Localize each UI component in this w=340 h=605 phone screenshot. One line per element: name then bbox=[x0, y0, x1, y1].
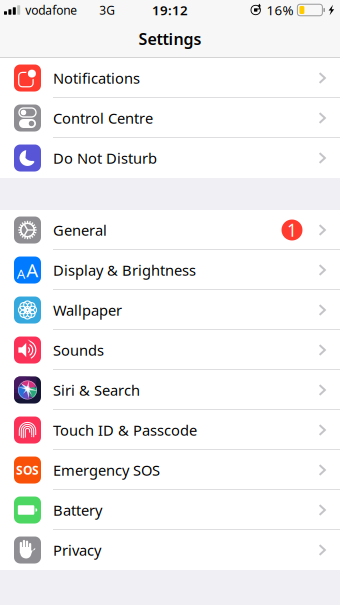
staticText: Control Centre bbox=[53, 108, 153, 128]
button[interactable]: General bbox=[0, 210, 340, 250]
staticText: 3G bbox=[99, 2, 115, 18]
staticText: 16% bbox=[266, 1, 293, 19]
button[interactable]: Battery bbox=[0, 490, 340, 530]
staticText: General bbox=[53, 220, 107, 240]
button[interactable]: Touch ID & Passcode bbox=[0, 410, 340, 450]
button[interactable]: Notifications bbox=[0, 58, 340, 98]
staticText: 19:12 bbox=[152, 1, 188, 19]
button[interactable]: Siri & Search bbox=[0, 370, 340, 410]
button[interactable]: SOS bbox=[0, 450, 340, 490]
staticText: Sounds bbox=[53, 340, 104, 360]
button[interactable]: A bbox=[0, 250, 340, 290]
staticText: vodafone bbox=[25, 2, 77, 18]
staticText: Emergency SOS bbox=[53, 460, 160, 480]
staticText: SOS bbox=[16, 462, 39, 478]
staticText: Siri & Search bbox=[53, 380, 140, 400]
staticText: Notifications bbox=[53, 68, 140, 88]
staticText: Display & Brightness bbox=[53, 260, 196, 280]
staticText: Settings bbox=[138, 28, 201, 49]
button[interactable]: Sounds bbox=[0, 330, 340, 370]
button[interactable]: Control Centre bbox=[0, 98, 340, 138]
staticText: Touch ID & Passcode bbox=[53, 420, 197, 440]
staticText: Battery bbox=[53, 500, 102, 520]
staticText: A bbox=[17, 265, 26, 282]
staticText: Do Not Disturb bbox=[53, 148, 157, 168]
button[interactable]: Wallpaper bbox=[0, 290, 340, 330]
staticText: 1 bbox=[287, 218, 297, 241]
button[interactable]: Do Not Disturb bbox=[0, 138, 340, 178]
staticText: Wallpaper bbox=[53, 300, 122, 320]
button[interactable]: Privacy bbox=[0, 530, 340, 570]
staticText: A bbox=[26, 258, 38, 282]
staticText: Privacy bbox=[53, 540, 101, 560]
